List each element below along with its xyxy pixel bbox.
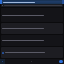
button[interactable] [1,35,63,46]
button[interactable]: Create new [59,60,63,63]
button[interactable]: Library [29,59,34,64]
button[interactable] [1,8,63,22]
button[interactable] [1,23,63,34]
button[interactable]: Home [0,59,5,64]
button[interactable] [1,4,63,7]
button[interactable] [1,47,63,58]
